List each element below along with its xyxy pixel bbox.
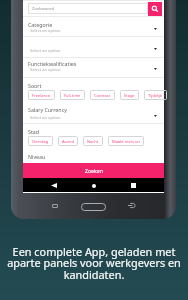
button[interactable]: Recents xyxy=(52,204,58,208)
button[interactable]: Back xyxy=(49,181,58,190)
button[interactable]: Recents xyxy=(129,181,138,190)
button[interactable]: Full-time xyxy=(60,90,85,100)
staticText: Maakt niets uit xyxy=(112,139,140,144)
staticText: Een complete App, geladen met aparte pan… xyxy=(6,244,182,282)
staticText: Zoeken xyxy=(85,167,103,174)
staticText: Tijdelijk xyxy=(148,93,163,98)
staticText: Contract xyxy=(94,93,111,98)
button[interactable]: Zoeken xyxy=(23,163,164,178)
staticText: Select an option xyxy=(30,115,61,121)
button[interactable]: Avond xyxy=(58,136,78,146)
button[interactable]: Home xyxy=(89,181,98,190)
staticText: Stage xyxy=(124,93,135,98)
button[interactable]: Nacht xyxy=(83,136,103,146)
button[interactable]: Freelance xyxy=(28,90,55,100)
button[interactable]: Tijdelijk xyxy=(144,90,167,100)
button[interactable]: Functiekwalificaties xyxy=(23,57,164,77)
staticText: Overdag xyxy=(32,139,49,144)
staticText: Functiekwalificaties xyxy=(28,60,77,67)
button[interactable]: Back xyxy=(128,203,135,208)
staticText: Stad xyxy=(28,128,40,135)
staticText: Niveau xyxy=(28,153,46,160)
button[interactable]: Select an option xyxy=(23,36,164,57)
staticText: Select an option xyxy=(30,48,61,54)
staticText: Categorie xyxy=(28,21,53,28)
staticText: Avond xyxy=(62,139,74,144)
button[interactable]: Salary Currency xyxy=(23,100,164,123)
button[interactable]: Zoekwoord xyxy=(28,3,148,14)
button[interactable]: Contract xyxy=(90,90,115,100)
button[interactable]: Maakt niets uit xyxy=(108,136,144,146)
button[interactable]: Overdag xyxy=(28,136,53,146)
staticText: Salary Currency xyxy=(28,106,67,113)
staticText: Select an option xyxy=(30,67,61,73)
staticText: Select an option xyxy=(30,28,61,34)
staticText: Freelance xyxy=(32,93,51,98)
staticText: Zoekwoord xyxy=(32,6,55,12)
button[interactable]: Home xyxy=(81,203,106,211)
button[interactable]: Stage xyxy=(120,90,139,100)
staticText: Nacht xyxy=(87,139,99,144)
button[interactable]: Categorie xyxy=(23,17,164,36)
button[interactable]: Zoeken xyxy=(148,2,162,16)
staticText: Full-time xyxy=(64,93,81,98)
staticText: Soort xyxy=(28,82,42,89)
